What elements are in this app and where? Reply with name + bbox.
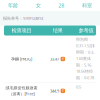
staticText: 1.60黄体 (76, 56, 91, 61)
staticText: 科室 (82, 2, 92, 9)
staticText: 孕酮 [PROG] (11, 56, 32, 62)
staticText: 报告单号：9709124814 (3, 16, 43, 21)
staticText: 344.9 (50, 88, 59, 93)
staticText: 结果 (52, 27, 62, 34)
staticText: 绒毛膜促性腺激素 (5, 85, 37, 90)
staticText: 年龄 (8, 2, 18, 9)
staticText: ↑ (61, 57, 64, 61)
staticText: 卵泡期： (76, 37, 92, 42)
staticText: 18.56绝经 (76, 69, 93, 74)
staticText: ↑ (61, 89, 64, 93)
staticText: 期：0-0.78 (76, 75, 94, 80)
staticText: 0.31-1.52排 (76, 43, 95, 48)
staticText: 28 (58, 2, 64, 9)
staticText: 0-5 (76, 84, 81, 90)
button[interactable]: 孕酮 [PROG] (4, 35, 96, 82)
staticText: 检查项目 (11, 27, 31, 34)
staticText: 33.47 (50, 56, 59, 62)
staticText: 女 (36, 2, 41, 9)
staticText: 卵期：0.3- (76, 49, 94, 55)
button[interactable]: 绒毛膜促性腺激素 (4, 83, 96, 99)
staticText: 期：5.16- (76, 62, 92, 68)
staticText: （游离）[Free] (8, 91, 34, 96)
staticText: 参考值 (78, 27, 93, 34)
